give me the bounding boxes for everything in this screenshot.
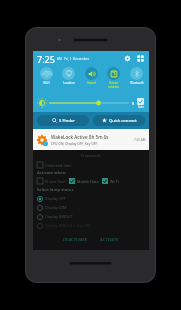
staticText: 5: [132, 101, 135, 106]
button[interactable]: S Finder: [37, 115, 89, 126]
button[interactable]: Auto brightness: [137, 98, 144, 109]
button[interactable]: Quick connect: [93, 115, 145, 126]
staticText: Location: [63, 81, 75, 85]
staticText: Sound: [87, 81, 96, 85]
button[interactable]: Wi-Fi: [102, 178, 119, 184]
button[interactable]: Display OFF: [37, 194, 145, 203]
button[interactable]: Screen rotation: [103, 66, 124, 88]
staticText: Wi-Fi: [110, 179, 119, 184]
staticText: AM: [57, 57, 62, 61]
staticText: 0 seconds: [37, 153, 145, 159]
staticText: Display BRIGHT: [45, 214, 73, 219]
staticText: Screen rotation: [108, 81, 119, 88]
button[interactable]: Display BRIGHT: [37, 212, 145, 221]
staticText: Mobile Data: [77, 179, 99, 184]
button[interactable]: DEACTIVATE: [59, 235, 92, 245]
staticText: Select lamp status: [37, 187, 74, 193]
button[interactable]: Brightness: [49, 98, 129, 108]
button[interactable]: Location: [58, 66, 79, 85]
staticText: Bluetooth: [130, 81, 144, 85]
staticText: Quick connect: [109, 118, 137, 124]
staticText: 7:25: [37, 53, 55, 65]
staticText: CPU ON, Display OFF, Key OFF: [51, 141, 98, 145]
staticText: Unlimited time: [45, 163, 72, 168]
staticText: Activate when:: [37, 170, 67, 176]
button[interactable]: Settings: [123, 54, 132, 63]
button[interactable]: ACTIVATE: [96, 235, 123, 245]
staticText: ACTIVATE: [100, 237, 119, 243]
staticText: 7:25 AM: [134, 138, 146, 142]
staticText: DEACTIVATE: [63, 237, 88, 243]
button[interactable]: Bluetooth: [126, 66, 147, 85]
staticText: Wi-Fi: [43, 81, 50, 85]
button[interactable]: Mobile Data: [69, 178, 99, 184]
button[interactable]: Display BRIGHT + Key ON: [37, 221, 145, 230]
staticText: Display BRIGHT + Key ON: [45, 223, 91, 228]
staticText: Display DIM: [45, 205, 67, 210]
staticText: Phone Start: [45, 179, 66, 184]
staticText: WakeLock Active 0h 5m 0s: [51, 134, 109, 140]
button[interactable]: Phone Start: [37, 178, 66, 184]
button[interactable]: Wi-Fi: [36, 66, 57, 85]
button[interactable]: Sound: [81, 66, 102, 85]
button[interactable]: Display DIM: [37, 203, 145, 212]
staticText: S Finder: [59, 118, 75, 124]
button[interactable]: WakeLock Active 0h 5m 0s: [36, 129, 146, 150]
staticText: Auto: [138, 105, 144, 109]
staticText: Fri, 1 December: [64, 56, 90, 61]
button[interactable]: Edit quick settings: [136, 54, 145, 63]
button[interactable]: Unlimited time: [37, 162, 72, 168]
staticText: Display OFF: [45, 196, 66, 201]
